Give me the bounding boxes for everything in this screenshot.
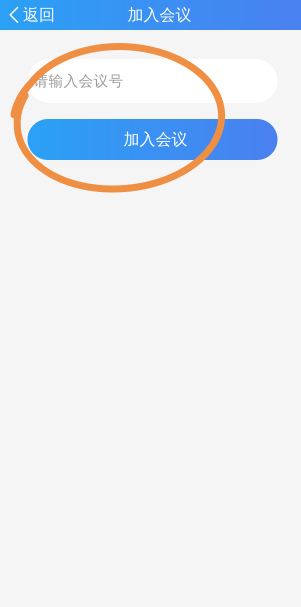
staticText: 请输入会议号 — [33, 72, 123, 90]
staticText: 返回 — [23, 5, 55, 25]
staticText: 加入会议 — [127, 5, 191, 25]
button[interactable]: 加入会议 — [27, 119, 277, 160]
staticText: 加入会议 — [123, 130, 187, 149]
button[interactable]: 返回 — [0, 0, 67, 30]
button[interactable]: 请输入会议号 — [27, 59, 277, 103]
